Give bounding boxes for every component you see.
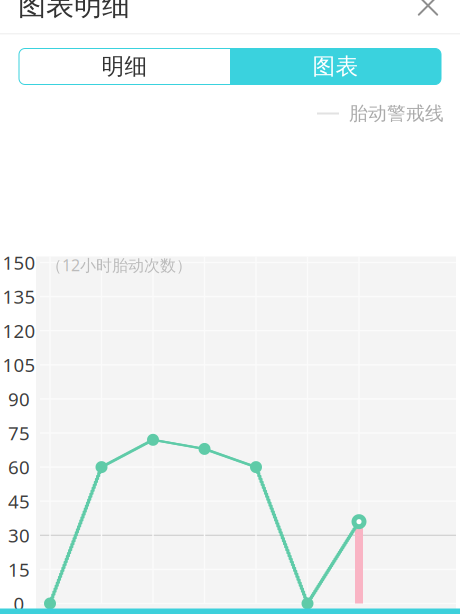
staticText: 120 — [2, 318, 35, 343]
staticText: 105 — [2, 352, 35, 377]
staticText: 09/20 — [179, 606, 230, 614]
staticText: 45 — [8, 489, 30, 514]
staticText: 09/18 — [76, 606, 127, 614]
button[interactable]: 关闭 — [406, 0, 450, 27]
staticText: 图表明细 — [18, 0, 130, 23]
staticText: 150 — [2, 250, 35, 275]
staticText: 60 — [8, 455, 30, 479]
staticText: 09/19 — [127, 606, 178, 614]
staticText: （12小时胎动次数） — [46, 254, 192, 276]
staticText: 15 — [8, 557, 30, 582]
staticText: 75 — [8, 421, 30, 445]
staticText: 图表 — [312, 53, 358, 80]
staticText: 胎动警戒线 — [349, 102, 444, 125]
staticText: 明细 — [101, 53, 147, 80]
staticText: 0 — [13, 591, 24, 614]
button[interactable]: 图表 — [230, 48, 441, 84]
staticText: 90 — [8, 386, 30, 411]
staticText: 09/22 — [282, 606, 333, 614]
staticText: /17 — [35, 606, 64, 614]
staticText: 09/23 — [333, 606, 384, 614]
staticText: 09/21 — [230, 606, 281, 614]
button[interactable]: 明细 — [19, 48, 230, 84]
staticText: 30 — [8, 523, 30, 548]
staticText: 135 — [2, 284, 35, 309]
